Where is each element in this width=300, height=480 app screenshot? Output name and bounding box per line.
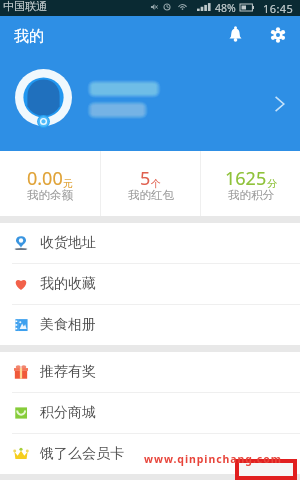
staticText: 分 <box>267 177 277 190</box>
staticText: 我的收藏 <box>40 275 96 293</box>
staticText: 16:45 <box>263 1 294 16</box>
staticText: 0.00 <box>27 166 63 191</box>
button[interactable]: 收货地址 <box>0 223 300 263</box>
button[interactable]: 5 <box>101 151 200 216</box>
button[interactable]: 美食相册 <box>0 305 300 345</box>
button[interactable] <box>0 57 300 151</box>
staticText: 我的余额 <box>27 188 73 202</box>
button[interactable]: Notifications <box>217 16 254 57</box>
staticText: 美食相册 <box>40 316 96 334</box>
button[interactable]: 积分商城 <box>0 393 300 433</box>
staticText: 48% <box>215 1 236 15</box>
staticText: 我的红包 <box>128 188 174 202</box>
staticText: www.qinpinchang.com <box>144 452 282 466</box>
button[interactable]: 我的收藏 <box>0 264 300 304</box>
button[interactable]: 推荐有奖 <box>0 352 300 392</box>
staticText: 饿了么会员卡 <box>40 445 124 463</box>
staticText: 我的 <box>14 27 44 46</box>
staticText: 推荐有奖 <box>40 363 96 381</box>
staticText: 元 <box>63 177 73 190</box>
staticText: 5 <box>140 166 151 191</box>
button[interactable]: 1625 <box>201 151 300 216</box>
staticText: 个 <box>151 177 161 190</box>
button[interactable]: Settings <box>259 16 296 57</box>
button[interactable]: 0.00 <box>0 151 100 216</box>
staticText: 我的积分 <box>228 188 274 202</box>
staticText: 中国联通 <box>3 0 47 13</box>
button[interactable]: 饿了么会员卡 <box>0 434 300 474</box>
staticText: 积分商城 <box>40 404 96 422</box>
staticText: 收货地址 <box>40 234 96 252</box>
staticText: 1625 <box>225 166 267 191</box>
